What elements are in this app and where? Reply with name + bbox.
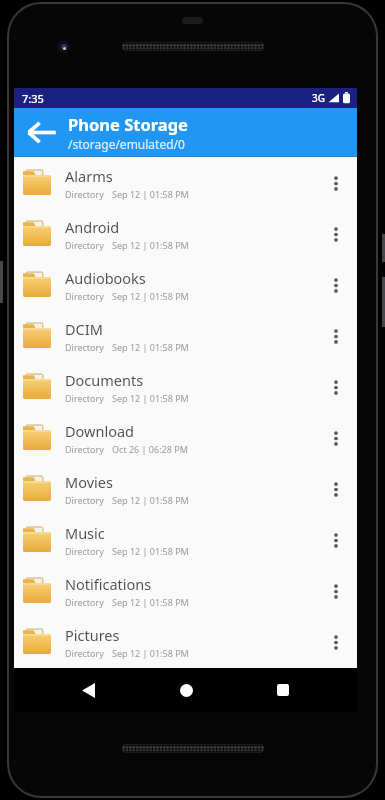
staticText: Sep 12 | 01:58 PM — [112, 647, 189, 659]
staticText: Directory — [65, 443, 104, 455]
staticText: Directory — [65, 494, 104, 506]
button[interactable]: More options for Android — [319, 210, 353, 258]
button[interactable]: More options for Notifications — [319, 567, 353, 615]
button[interactable]: Alarms — [14, 157, 357, 208]
staticText: 7:35 — [22, 91, 44, 106]
staticText: DCIM — [65, 319, 103, 339]
staticText: Android — [65, 217, 120, 237]
staticText: Sep 12 | 01:58 PM — [112, 239, 189, 251]
staticText: Directory — [65, 239, 104, 251]
button[interactable]: Notifications — [14, 565, 357, 616]
staticText: Directory — [65, 647, 104, 659]
button[interactable]: More options for Documents — [319, 363, 353, 411]
staticText: Directory — [65, 596, 104, 608]
button[interactable]: Back — [64, 668, 112, 712]
staticText: Download — [65, 421, 134, 441]
staticText: Oct 26 | 06:28 PM — [112, 443, 188, 455]
staticText: Sep 12 | 01:58 PM — [112, 545, 189, 557]
staticText: Sep 12 | 01:58 PM — [112, 596, 189, 608]
button[interactable]: Documents — [14, 361, 357, 412]
button[interactable]: More options for Music — [319, 516, 353, 564]
button[interactable]: DCIM — [14, 310, 357, 361]
button[interactable]: Android — [14, 208, 357, 259]
staticText: /storage/emulated/0 — [68, 136, 185, 152]
button[interactable]: More options for DCIM — [319, 312, 353, 360]
staticText: Movies — [65, 472, 113, 492]
button[interactable]: Music — [14, 514, 357, 565]
button[interactable]: Home — [162, 668, 210, 712]
button[interactable]: Audiobooks — [14, 259, 357, 310]
button[interactable]: More options for Alarms — [319, 159, 353, 207]
staticText: Directory — [65, 188, 104, 200]
staticText: Sep 12 | 01:58 PM — [112, 188, 189, 200]
staticText: Documents — [65, 370, 144, 390]
button[interactable]: Movies — [14, 463, 357, 514]
staticText: Directory — [65, 392, 104, 404]
staticText: Sep 12 | 01:58 PM — [112, 392, 189, 404]
staticText: Music — [65, 523, 105, 543]
staticText: Phone Storage — [68, 113, 188, 135]
button[interactable]: More options for Movies — [319, 465, 353, 513]
button[interactable]: Recent apps — [259, 668, 307, 712]
staticText: Audiobooks — [65, 268, 146, 288]
staticText: Sep 12 | 01:58 PM — [112, 494, 189, 506]
staticText: Directory — [65, 341, 104, 353]
staticText: Pictures — [65, 625, 120, 645]
staticText: Alarms — [65, 166, 113, 186]
button[interactable]: More options for Pictures — [319, 618, 353, 666]
staticText: Sep 12 | 01:58 PM — [112, 341, 189, 353]
staticText: Directory — [65, 545, 104, 557]
button[interactable]: Navigate up — [14, 108, 68, 156]
staticText: Notifications — [65, 574, 152, 594]
staticText: Sep 12 | 01:58 PM — [112, 290, 189, 302]
button[interactable]: More options for Audiobooks — [319, 261, 353, 309]
button[interactable]: Download — [14, 412, 357, 463]
button[interactable]: Pictures — [14, 616, 357, 667]
button[interactable]: More options for Download — [319, 414, 353, 462]
staticText: 3G — [312, 91, 325, 105]
staticText: Directory — [65, 290, 104, 302]
